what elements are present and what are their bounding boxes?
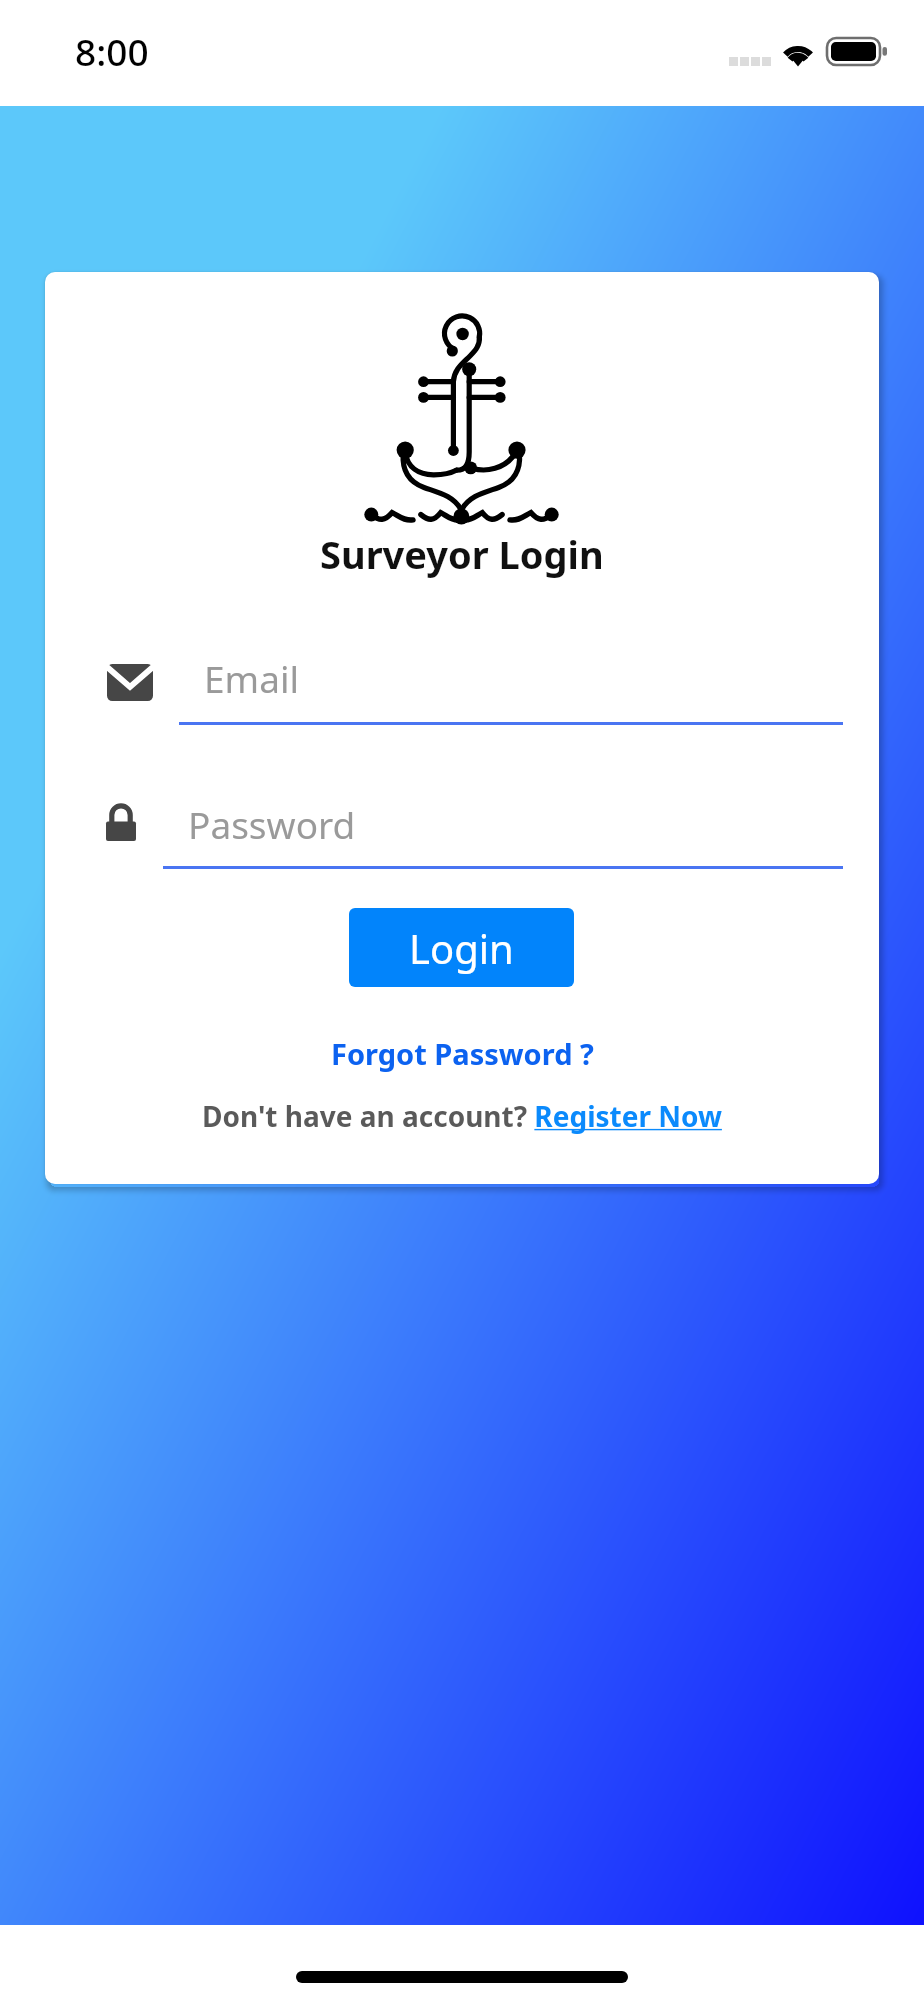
- staticText: Don't have an account? Register Now: [202, 1097, 722, 1135]
- staticText: 8:00: [75, 26, 149, 76]
- staticText: Login: [409, 921, 514, 975]
- staticText: Password: [188, 799, 356, 849]
- button[interactable]: Don't have an account? Register Now: [196, 1095, 728, 1137]
- button[interactable]: Forgot Password ?: [325, 1032, 600, 1075]
- button[interactable]: Login: [349, 908, 574, 987]
- staticText: Email: [204, 653, 300, 703]
- button[interactable]: Password: [102, 794, 848, 869]
- staticText: Surveyor Login: [320, 528, 604, 580]
- staticText: Forgot Password ?: [331, 1034, 594, 1073]
- button[interactable]: Email: [102, 652, 848, 727]
